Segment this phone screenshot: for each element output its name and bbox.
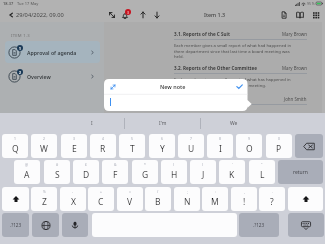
staticText: 3 bbox=[73, 136, 75, 141]
staticText: .?123 bbox=[10, 222, 22, 228]
button[interactable]: * bbox=[132, 160, 158, 184]
staticText: T bbox=[130, 143, 135, 155]
button[interactable]: Apps bbox=[311, 10, 320, 19]
button[interactable]: # bbox=[44, 160, 70, 184]
staticText: Item 1.3 bbox=[204, 11, 226, 18]
button[interactable]: " bbox=[249, 160, 275, 184]
staticText: H bbox=[171, 169, 178, 181]
staticText: 8 bbox=[219, 136, 221, 141]
button[interactable]: 3 bbox=[61, 134, 87, 158]
staticText: return bbox=[293, 169, 308, 176]
button[interactable]: .?123 bbox=[239, 213, 279, 237]
staticText: £ bbox=[85, 162, 87, 167]
button[interactable]: Document bbox=[279, 10, 288, 19]
button[interactable]: I bbox=[74, 113, 110, 133]
staticText: & bbox=[114, 162, 117, 167]
button[interactable]: Agenda bbox=[295, 10, 304, 19]
staticText: G bbox=[142, 169, 149, 181]
staticText: ! bbox=[243, 196, 246, 208]
button[interactable]: 8 bbox=[207, 134, 233, 158]
staticText: L bbox=[260, 169, 265, 181]
button[interactable]: @ bbox=[14, 160, 40, 184]
staticText: ) bbox=[202, 162, 204, 167]
staticText: % bbox=[43, 189, 46, 194]
button[interactable]: Dictate bbox=[62, 213, 88, 237]
staticText: Mary Brown bbox=[282, 31, 307, 37]
button[interactable]: Hide keyboard bbox=[288, 213, 324, 237]
button[interactable]: : bbox=[202, 187, 228, 211]
button[interactable]: = bbox=[117, 187, 143, 211]
staticText: , bbox=[244, 189, 245, 194]
button[interactable]: 9 bbox=[236, 134, 262, 158]
staticText: E bbox=[72, 143, 77, 155]
staticText: @ bbox=[25, 162, 29, 167]
staticText: 7 bbox=[190, 136, 192, 141]
button[interactable]: 5 bbox=[119, 134, 145, 158]
button[interactable]: - bbox=[60, 187, 86, 211]
staticText: B bbox=[155, 196, 161, 208]
button[interactable]: ( bbox=[161, 160, 187, 184]
button[interactable]: 6 bbox=[149, 134, 175, 158]
staticText: S bbox=[55, 169, 60, 181]
button[interactable]: We bbox=[216, 113, 252, 133]
staticText: 4 bbox=[102, 136, 104, 141]
staticText: I bbox=[91, 120, 93, 127]
button[interactable]: % bbox=[31, 187, 57, 211]
staticText: U bbox=[188, 143, 195, 155]
staticText: Z bbox=[42, 196, 47, 208]
staticText: X bbox=[71, 196, 76, 208]
button[interactable]: 4 bbox=[90, 134, 116, 158]
button[interactable]: . bbox=[259, 187, 285, 211]
button[interactable]: Next item bbox=[152, 10, 161, 19]
button[interactable]: 7 bbox=[178, 134, 204, 158]
button[interactable]: I'm bbox=[145, 113, 181, 133]
staticText: + bbox=[100, 189, 102, 194]
staticText: 1 bbox=[19, 46, 21, 51]
staticText: .?123 bbox=[253, 222, 265, 228]
button[interactable]: + bbox=[88, 187, 114, 211]
button[interactable]: return bbox=[278, 160, 323, 184]
button[interactable]: 1 bbox=[2, 134, 28, 158]
other: Done bbox=[236, 83, 243, 90]
button[interactable]: 2 bbox=[31, 134, 57, 158]
button[interactable]: 29/04/2022, 09.00 bbox=[8, 7, 66, 22]
button[interactable]: ) bbox=[190, 160, 216, 184]
button[interactable]: ; bbox=[174, 187, 200, 211]
staticText: = bbox=[129, 189, 131, 194]
button[interactable]: 2 bbox=[5, 65, 100, 87]
button[interactable]: , bbox=[231, 187, 257, 211]
staticText: Q bbox=[12, 143, 19, 155]
staticText: 1 bbox=[14, 136, 16, 141]
button[interactable]: Shift bbox=[288, 187, 323, 211]
button[interactable]: 1 bbox=[5, 41, 100, 63]
button[interactable]: Previous item bbox=[138, 10, 147, 19]
staticText: F bbox=[113, 169, 118, 181]
staticText: Tue 17 May bbox=[17, 1, 39, 6]
staticText: ITEM 1.3 bbox=[11, 33, 30, 39]
button[interactable]: Notifications bbox=[120, 10, 129, 19]
button[interactable]: Change language bbox=[32, 213, 59, 237]
button[interactable]: £ bbox=[73, 160, 99, 184]
staticText: 3.2. Reports of the Other Committee bbox=[174, 65, 258, 71]
button[interactable]: .?123 bbox=[2, 213, 29, 237]
staticText: Y bbox=[160, 143, 165, 155]
staticText: ; bbox=[187, 189, 188, 194]
button[interactable]: ' bbox=[219, 160, 245, 184]
button[interactable]: Collapse bbox=[107, 10, 116, 19]
button[interactable]: 0 bbox=[266, 134, 292, 158]
staticText: " bbox=[261, 162, 263, 167]
button[interactable]: & bbox=[102, 160, 128, 184]
other: Expand bbox=[110, 84, 116, 90]
button[interactable]: Shift bbox=[2, 187, 29, 211]
button[interactable]: / bbox=[145, 187, 171, 211]
button[interactable]: Backspace bbox=[295, 134, 323, 158]
staticText: 2 bbox=[43, 136, 45, 141]
staticText: New note bbox=[160, 83, 186, 90]
staticText: 18.37 bbox=[3, 1, 14, 6]
staticText: 6 bbox=[161, 136, 163, 141]
staticText: # bbox=[56, 162, 59, 167]
staticText: R bbox=[100, 143, 106, 155]
staticText: I bbox=[219, 143, 222, 155]
staticText: J bbox=[202, 169, 205, 181]
